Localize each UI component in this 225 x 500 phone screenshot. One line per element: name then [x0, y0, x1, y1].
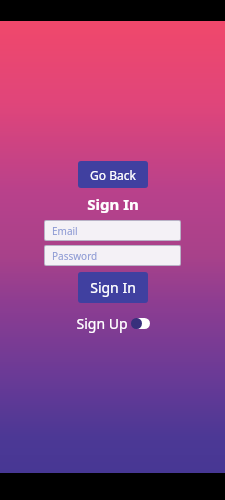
button[interactable]: Sign In: [78, 272, 148, 303]
staticText: Sign Up: [76, 314, 128, 333]
staticText: Email: [52, 224, 78, 238]
button[interactable]: Sign Up: [74, 312, 152, 335]
staticText: Sign In: [87, 194, 139, 214]
staticText: Go Back: [90, 167, 136, 183]
button[interactable]: Toggle Sign Up: [131, 318, 150, 329]
staticText: Password: [52, 249, 98, 263]
button[interactable]: Go Back: [78, 161, 148, 188]
button[interactable]: Email: [45, 221, 180, 240]
button[interactable]: Password: [45, 246, 180, 265]
staticText: Sign In: [90, 278, 136, 297]
